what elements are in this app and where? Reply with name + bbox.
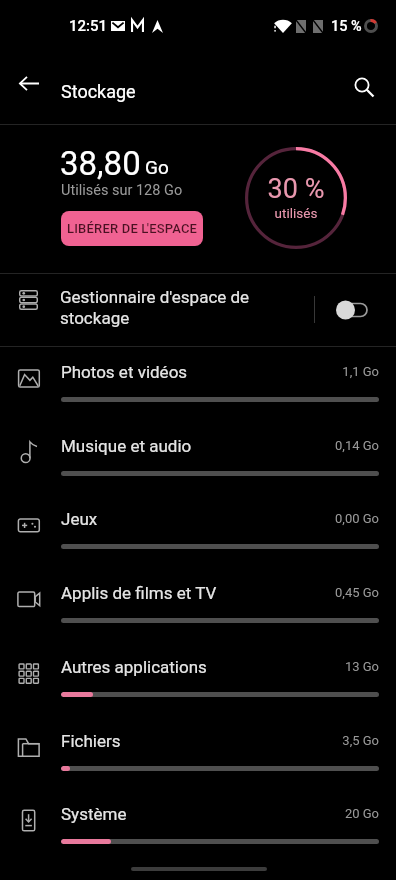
button[interactable]: Photos et vidéos [0, 347, 396, 421]
staticText: Système [61, 804, 127, 824]
staticText: 15 % [331, 18, 362, 35]
staticText: 0,45 Go [0, 585, 379, 600]
button[interactable]: LIBÉRER DE L'ESPACE [61, 211, 203, 246]
button[interactable]: Rechercher [347, 64, 387, 104]
staticText: Autres applications [61, 657, 207, 677]
staticText: 20 Go [0, 806, 379, 821]
staticText: 12:51 [69, 17, 108, 35]
staticText: 0,14 Go [0, 438, 379, 453]
staticText: Fichiers [61, 731, 121, 751]
button[interactable]: Fichiers [0, 716, 396, 790]
staticText: 0,00 Go [0, 511, 379, 526]
button[interactable]: Gestionnaire d'espace de stockage [0, 274, 396, 346]
staticText: 1,1 Go [0, 364, 379, 379]
staticText: Applis de films et TV [61, 583, 217, 603]
staticText: 30 % [245, 173, 347, 205]
staticText: utilisés [245, 205, 347, 221]
staticText: Photos et vidéos [61, 362, 188, 382]
staticText: LIBÉRER DE L'ESPACE [67, 221, 198, 236]
staticText: 3,5 Go [0, 733, 379, 748]
staticText: 38,80 [60, 144, 141, 183]
staticText: Jeux [61, 509, 98, 529]
button[interactable]: Retour [9, 64, 49, 104]
staticText: 13 Go [0, 659, 379, 674]
button[interactable]: Autres applications [0, 642, 396, 716]
staticText: Gestionnaire d'espace de stockage [60, 287, 250, 328]
staticText: Stockage [61, 81, 136, 102]
button[interactable]: Activer le gestionnaire d'espace de stoc… [330, 289, 382, 331]
staticText: Musique et audio [61, 436, 192, 456]
button[interactable]: Musique et audio [0, 421, 396, 495]
staticText: Go [145, 156, 169, 178]
button[interactable]: Applis de films et TV [0, 568, 396, 642]
staticText: Utilisés sur 128 Go [61, 182, 183, 199]
button[interactable]: Jeux [0, 494, 396, 568]
button[interactable]: Système [0, 789, 396, 863]
